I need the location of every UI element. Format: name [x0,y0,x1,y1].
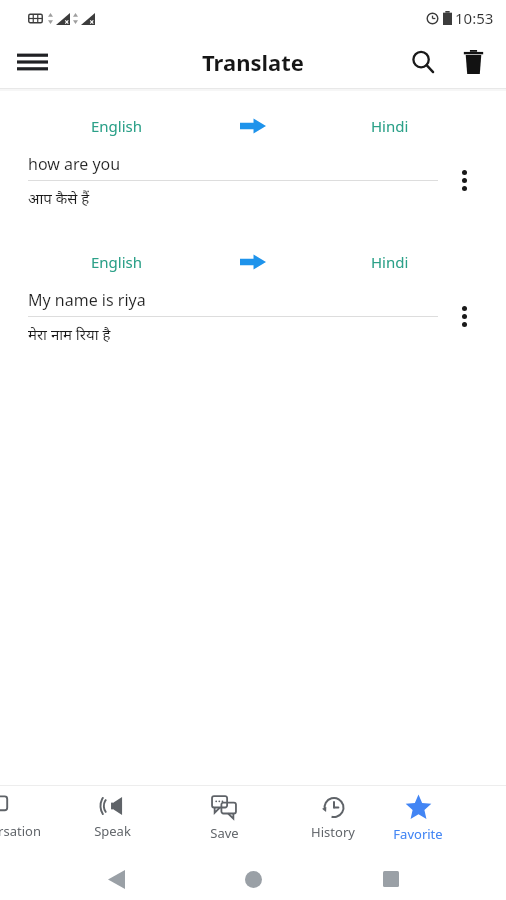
button[interactable]: Delete all [450,39,496,85]
button[interactable]: Favorite [386,786,450,848]
staticText: History [311,823,355,841]
staticText: Speak [94,822,131,840]
button[interactable]: History [280,786,386,848]
staticText: मेरा नाम रिया है [28,324,111,344]
staticText: Translate [202,47,304,77]
button[interactable]: English [16,105,490,223]
button[interactable]: English [16,241,490,359]
staticText: Save [210,824,239,842]
staticText: how are you [28,153,121,175]
button[interactable]: More options [438,147,490,214]
staticText: English [91,252,143,272]
staticText: Conversation [0,822,41,840]
staticText: आप कैसे हैं [28,188,90,208]
staticText: Hindi [371,116,409,136]
staticText: Hindi [371,252,409,272]
button[interactable]: Save [168,786,280,848]
staticText: My name is riya [28,289,146,311]
staticText: Favorite [393,825,443,843]
button[interactable]: More options [438,283,490,350]
button[interactable]: Home [231,858,275,900]
button[interactable]: Speak [56,786,168,848]
button[interactable]: Recent apps [369,858,413,900]
staticText: English [91,116,143,136]
button[interactable]: Back [94,858,138,900]
button[interactable]: Conversation [0,786,56,848]
staticText: 10:53 [455,8,494,28]
button[interactable]: Search [400,39,446,85]
button[interactable]: Open navigation menu [8,38,56,86]
